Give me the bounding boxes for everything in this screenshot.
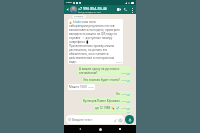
button[interactable]: Attach: [113, 118, 117, 122]
button[interactable]: Back: [65, 7, 70, 12]
button[interactable]: Back: [76, 125, 84, 133]
button[interactable]: Введите текст: [66, 115, 124, 124]
staticText: Можно 1500: [69, 85, 87, 89]
staticText: k-lab.ru вы зона: [73, 20, 96, 24]
staticText: Это сколько будет стоить?: [83, 78, 120, 82]
button[interactable]: Это сколько будет стоить?: [82, 77, 131, 83]
staticText: Ок: [116, 92, 120, 96]
button[interactable]: А можно сдачу на русском и английском?: [78, 66, 131, 76]
staticText: +7 996 854-59-46: [78, 6, 107, 11]
button[interactable]: Можно 1500: [68, 84, 95, 90]
staticText: был(а) сегодня в 17:06: [78, 11, 101, 14]
button[interactable]: Video call: [115, 6, 122, 13]
button[interactable]: Call: [122, 6, 129, 13]
staticText: лаборатории результаты тестов выполняютс…: [69, 24, 122, 44]
button[interactable]: Ок: [115, 91, 131, 97]
staticText: дд 12 1988 💊 🩺: [95, 106, 120, 110]
staticText: 16:30: [121, 79, 127, 82]
button[interactable]: Camera: [118, 118, 122, 122]
staticText: 16:31: [88, 86, 94, 89]
staticText: При включении справку можно распечатать,…: [69, 44, 122, 64]
button[interactable]: Кузнецов Павел Юрьевич: [82, 98, 131, 104]
button[interactable]: Home: [96, 125, 104, 133]
staticText: 16:30: [121, 72, 127, 75]
button[interactable]: More options: [129, 7, 135, 13]
staticText: 16:35: [121, 93, 127, 96]
staticText: 16:36: [121, 107, 127, 110]
staticText: Введите текст: [72, 118, 93, 122]
staticText: 16:35: [121, 100, 127, 103]
button[interactable]: дд 12 1988 💊 🩺: [94, 105, 131, 111]
button[interactable]: k-lab.ru вы зона: [68, 19, 123, 64]
staticText: 14:23: [66, 1, 72, 4]
staticText: Сегодня: [74, 15, 84, 18]
staticText: А можно сдачу на русском и английском?: [79, 67, 120, 75]
staticText: 16:12: [116, 61, 122, 64]
button[interactable]: Voice message: [125, 115, 134, 124]
staticText: Кузнецов Павел Юрьевич: [83, 99, 120, 103]
button[interactable]: Recents: [116, 125, 124, 133]
button[interactable]: Москва, улица Профсоюзная, дом: [78, 112, 131, 113]
